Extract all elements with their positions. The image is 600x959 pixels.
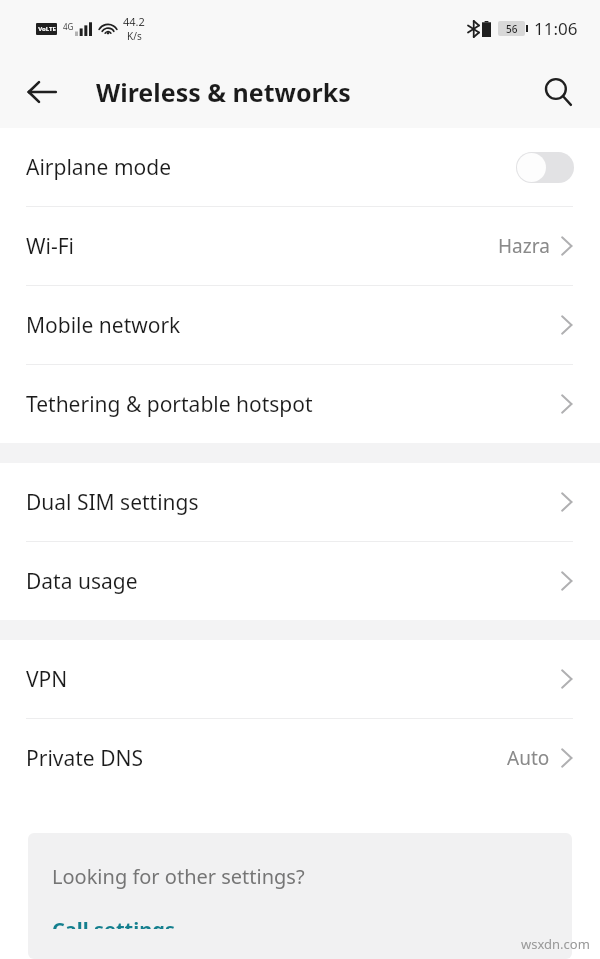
staticText: Auto xyxy=(507,745,550,771)
button[interactable]: Call settings xyxy=(52,916,175,929)
staticText: VoLTE xyxy=(38,25,56,33)
staticText: Tethering & portable hotspot xyxy=(26,390,560,419)
button[interactable]: Wi-Fi xyxy=(0,207,600,285)
staticText: Mobile network xyxy=(26,311,560,340)
staticText: 11:06 xyxy=(534,17,578,40)
staticText: Hazra xyxy=(498,233,550,259)
staticText: wsxdn.com xyxy=(521,935,590,953)
staticText: Wireless & networks xyxy=(96,75,351,109)
button[interactable]: Tethering & portable hotspot xyxy=(0,365,600,443)
button[interactable]: Private DNS xyxy=(0,719,600,797)
staticText: Private DNS xyxy=(26,744,507,773)
button[interactable]: Back xyxy=(14,64,70,120)
button[interactable]: VPN xyxy=(0,640,600,718)
button[interactable]: Airplane mode xyxy=(0,128,600,206)
button[interactable]: Looking for other settings? xyxy=(28,833,572,959)
staticText: Airplane mode xyxy=(26,153,516,182)
button[interactable]: Dual SIM settings xyxy=(0,463,600,541)
button[interactable]: Airplane mode toggle xyxy=(516,152,574,183)
staticText: 44.2 xyxy=(123,14,145,29)
staticText: K/s xyxy=(127,29,142,43)
button[interactable]: Mobile network xyxy=(0,286,600,364)
button[interactable]: Search xyxy=(530,64,586,120)
staticText: 56 xyxy=(506,22,518,36)
staticText: Dual SIM settings xyxy=(26,488,560,517)
staticText: Data usage xyxy=(26,567,560,596)
button[interactable]: Data usage xyxy=(0,542,600,620)
staticText: VPN xyxy=(26,665,560,694)
staticText: Wi-Fi xyxy=(26,232,498,261)
staticText: Looking for other settings? xyxy=(52,863,305,890)
staticText: 4G xyxy=(63,21,74,32)
